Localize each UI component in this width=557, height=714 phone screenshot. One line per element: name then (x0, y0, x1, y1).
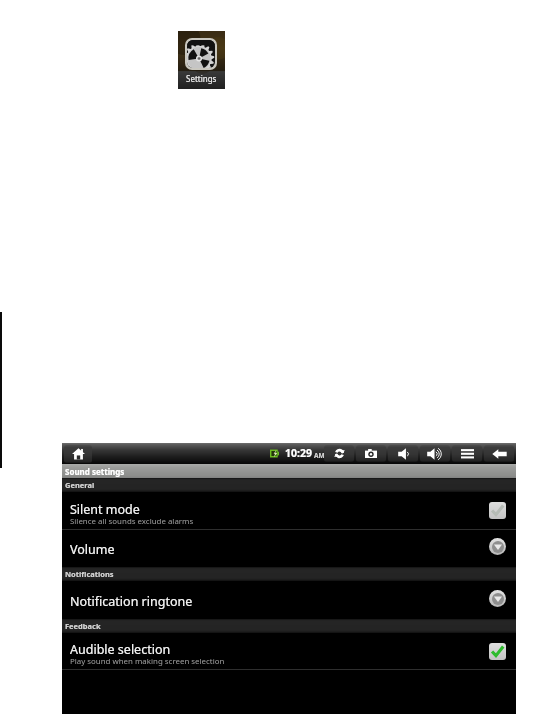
staticText: Audible selection (70, 641, 171, 658)
button[interactable]: Audible selection (62, 633, 516, 669)
staticText: Feedback (65, 621, 101, 631)
staticText: Settings (186, 73, 217, 84)
staticText: Play sound when making screen selection (70, 656, 225, 667)
button[interactable]: Rotate (324, 445, 354, 462)
button[interactable]: Unchecked (489, 502, 506, 519)
button[interactable]: Silent mode (62, 492, 516, 529)
staticText: AM (314, 451, 325, 460)
button[interactable]: Volume (62, 530, 516, 567)
staticText: 10:29 (285, 446, 312, 460)
staticText: Notification ringtone (70, 593, 193, 610)
button[interactable]: Screenshot (356, 445, 386, 462)
button[interactable]: Volume down (388, 445, 418, 462)
staticText: Silence all sounds exclude alarms (70, 516, 194, 527)
button[interactable]: Home (64, 445, 92, 463)
button[interactable]: Notification ringtone (62, 581, 516, 619)
button[interactable]: Expand (489, 590, 506, 607)
staticText: Volume (70, 541, 115, 558)
staticText: Notifications (65, 569, 114, 579)
button[interactable]: Back (484, 445, 514, 462)
button[interactable]: Checked (489, 643, 506, 660)
staticText: Sound settings (65, 466, 125, 477)
button[interactable]: Settings (187, 40, 215, 68)
button[interactable]: Menu (452, 445, 482, 462)
staticText: General (65, 480, 95, 490)
button[interactable]: Expand (489, 538, 506, 555)
button[interactable]: Volume up (420, 445, 450, 462)
staticText: Silent mode (70, 501, 140, 518)
